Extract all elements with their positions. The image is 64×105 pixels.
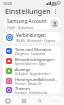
- button[interactable]: Anzeige: [3, 66, 61, 76]
- staticText: Helligkeit · Augenkomfort: [15, 72, 50, 76]
- button[interactable]: Themes: [3, 86, 61, 94]
- button[interactable]: Mehr Optionen: [51, 7, 60, 16]
- staticText: Symbole · Hintergründe: [15, 91, 48, 94]
- button[interactable]: Töne und Vibration: [3, 46, 61, 56]
- button[interactable]: Apps: [16, 96, 32, 105]
- staticText: Einstellungen: [5, 7, 51, 17]
- staticText: Hintergrundbild und Stil: [15, 77, 58, 82]
- staticText: Töne und Vibration: [15, 47, 52, 52]
- staticText: Profil · Sicherheit: [7, 25, 34, 29]
- staticText: Anzeige: [15, 67, 31, 72]
- staticText: Verbindungen: [16, 32, 46, 38]
- button[interactable]: Profil: [50, 19, 59, 28]
- button[interactable]: Suche: [32, 96, 48, 105]
- button[interactable]: Samsung Account: [3, 17, 61, 29]
- button[interactable]: Hintergrundbild und Stil: [3, 76, 61, 86]
- staticText: 12:30: [3, 1, 12, 6]
- staticText: Sperrbildschirm · Apps: [15, 62, 46, 66]
- staticText: Samsung Account: [7, 18, 47, 24]
- staticText: WLAN · Bluetooth · Flugmodus: [16, 39, 58, 43]
- button[interactable]: Start: [0, 96, 16, 105]
- staticText: Benachrichtigungen: [15, 57, 54, 62]
- staticText: Klingelton · Lautstärke: [15, 52, 46, 56]
- button[interactable]: Benachrichtigungen: [3, 56, 61, 66]
- staticText: Themes: [15, 86, 31, 91]
- button[interactable]: Verbindungen: [3, 32, 61, 43]
- staticText: Themes · Always On: [15, 82, 43, 86]
